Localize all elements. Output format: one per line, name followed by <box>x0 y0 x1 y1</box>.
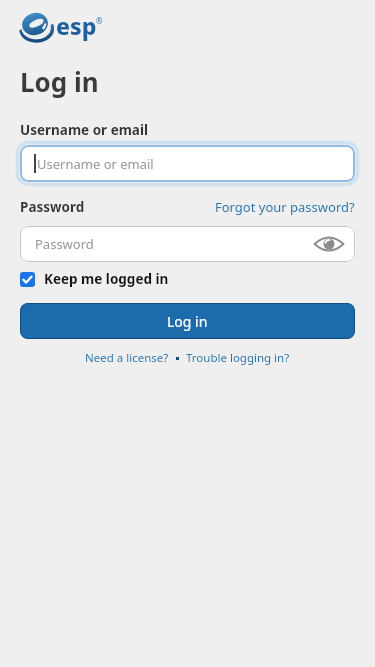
staticText: Password <box>20 198 85 216</box>
button[interactable]: Keep me logged in <box>20 270 169 288</box>
button[interactable]: Need a license? <box>85 350 169 366</box>
staticText: Keep me logged in <box>44 270 169 288</box>
staticText: Password <box>35 235 94 253</box>
staticText: esp <box>56 10 97 41</box>
staticText: Log in <box>167 312 208 331</box>
button[interactable]: Password <box>20 226 355 262</box>
staticText: Username or email <box>20 121 149 139</box>
staticText: Log in <box>20 64 99 99</box>
staticText: Username or email <box>37 155 154 173</box>
staticText: ® <box>96 15 103 26</box>
button[interactable]: Forgot your password? <box>215 198 355 216</box>
button[interactable]: Username or email <box>20 145 355 182</box>
button[interactable]: Log in <box>20 303 355 339</box>
button[interactable] <box>313 234 345 254</box>
button[interactable]: Trouble logging in? <box>186 350 290 366</box>
